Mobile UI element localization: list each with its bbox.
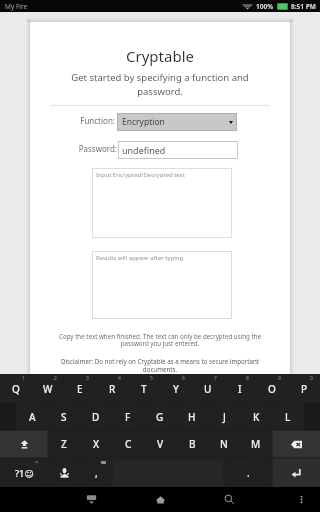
- staticText: L: [285, 410, 291, 424]
- button[interactable]: F: [112, 403, 144, 430]
- button[interactable]: Encryption: [117, 113, 237, 131]
- button[interactable]: R: [96, 374, 128, 403]
- staticText: My Fire: [5, 2, 28, 11]
- staticText: A: [29, 410, 36, 424]
- staticText: 6: [182, 375, 185, 382]
- button[interactable]: U: [192, 374, 224, 403]
- staticText: E: [77, 382, 83, 396]
- button[interactable]: undefined: [118, 141, 238, 159]
- button[interactable]: E: [64, 374, 96, 403]
- button[interactable]: .: [224, 458, 272, 487]
- staticText: G: [156, 410, 164, 424]
- staticText: 8:51 PM: [291, 2, 316, 11]
- button[interactable]: I: [224, 374, 256, 403]
- staticText: J: [223, 410, 226, 424]
- staticText: 4: [118, 375, 121, 382]
- button[interactable]: M: [240, 430, 272, 458]
- staticText: undefined: [122, 144, 166, 156]
- staticText: M: [251, 437, 261, 451]
- button[interactable]: G: [144, 403, 176, 430]
- staticText: H: [188, 410, 196, 424]
- staticText: ,: [95, 466, 98, 480]
- staticText: 7: [214, 375, 217, 382]
- staticText: Cryptable: [30, 46, 290, 66]
- staticText: P: [301, 382, 308, 396]
- staticText: F: [125, 410, 131, 424]
- button[interactable]: V: [144, 430, 176, 458]
- staticText: Password:: [69, 143, 117, 154]
- staticText: 1: [22, 375, 25, 382]
- button[interactable]: J: [208, 403, 240, 430]
- staticText: Disclaimer: Do not rely on Cryptable as …: [60, 357, 260, 373]
- staticText: 100%: [256, 2, 274, 11]
- button[interactable]: A: [16, 403, 48, 430]
- button[interactable]: Backspace: [272, 430, 320, 458]
- staticText: Function:: [69, 115, 115, 126]
- button[interactable]: B: [176, 430, 208, 458]
- staticText: Encryption: [122, 116, 165, 128]
- button[interactable]: C: [112, 430, 144, 458]
- staticText: Results will appear after typing: [96, 254, 184, 262]
- button[interactable]: ?1☺: [0, 458, 48, 487]
- button[interactable]: K: [240, 403, 272, 430]
- staticText: T: [141, 382, 147, 396]
- staticText: ?1☺: [15, 467, 34, 479]
- button[interactable]: O: [256, 374, 288, 403]
- button[interactable]: Enter: [272, 458, 320, 487]
- staticText: Input Encrypted/Decrypted text: [96, 171, 185, 179]
- button[interactable]: H: [176, 403, 208, 430]
- staticText: X: [93, 437, 100, 451]
- button[interactable]: W: [32, 374, 64, 403]
- button[interactable]: Hide keyboard: [79, 487, 103, 512]
- button[interactable]: D: [80, 403, 112, 430]
- button[interactable]: Z: [48, 430, 80, 458]
- staticText: V: [157, 437, 164, 451]
- staticText: 3: [86, 375, 89, 382]
- staticText: Copy the text when finished. The text ca…: [54, 332, 266, 348]
- staticText: R: [109, 382, 116, 396]
- button[interactable]: N: [208, 430, 240, 458]
- button[interactable]: Q: [0, 374, 32, 403]
- staticText: D: [92, 410, 100, 424]
- staticText: W: [43, 382, 53, 396]
- staticText: S: [61, 410, 67, 424]
- button[interactable]: P: [288, 374, 320, 403]
- staticText: 0: [310, 375, 313, 382]
- staticText: 9: [278, 375, 281, 382]
- button[interactable]: S: [48, 403, 80, 430]
- staticText: O: [268, 382, 276, 396]
- staticText: 2: [54, 375, 57, 382]
- button[interactable]: More options: [289, 487, 313, 512]
- button[interactable]: Home: [148, 487, 172, 512]
- staticText: ×: [35, 458, 39, 466]
- button[interactable]: Voice input: [48, 458, 80, 487]
- staticText: B: [189, 437, 196, 451]
- staticText: Y: [173, 382, 179, 396]
- staticText: C: [125, 437, 132, 451]
- button[interactable]: Y: [160, 374, 192, 403]
- staticText: U: [204, 382, 212, 396]
- button[interactable]: Search: [217, 487, 241, 512]
- button[interactable]: Results will appear after typing: [92, 251, 232, 319]
- staticText: 8: [246, 375, 249, 382]
- button[interactable]: ,: [80, 458, 112, 487]
- button[interactable]: L: [272, 403, 304, 430]
- staticText: I: [238, 382, 242, 396]
- staticText: Get started by specifying a function and…: [30, 71, 290, 98]
- staticText: Q: [12, 382, 20, 396]
- staticText: N: [220, 437, 228, 451]
- staticText: 5: [150, 375, 153, 382]
- button[interactable]: Shift: [0, 430, 48, 458]
- staticText: Z: [61, 437, 67, 451]
- button[interactable]: T: [128, 374, 160, 403]
- button[interactable]: X: [80, 430, 112, 458]
- staticText: .: [247, 466, 250, 480]
- button[interactable]: Input Encrypted/Decrypted text: [92, 168, 232, 238]
- staticText: K: [253, 410, 260, 424]
